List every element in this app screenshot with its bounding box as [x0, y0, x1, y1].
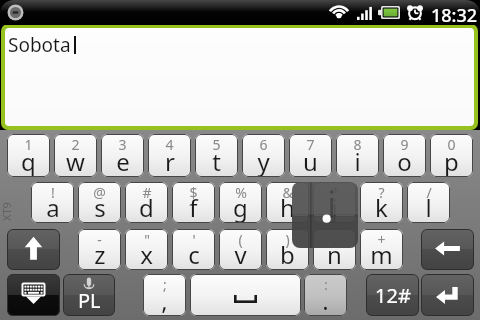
staticText: w	[66, 145, 85, 177]
staticText: d	[139, 191, 154, 223]
staticText: 6	[259, 135, 268, 154]
staticText: i	[354, 145, 361, 177]
button[interactable]: @	[78, 182, 121, 223]
staticText: v	[234, 238, 247, 270]
button[interactable]: 4	[148, 134, 191, 177]
staticText: )	[285, 230, 290, 249]
staticText: -	[97, 230, 102, 249]
button[interactable]: ;	[143, 274, 186, 316]
staticText: %	[235, 183, 247, 202]
staticText: +	[377, 230, 386, 249]
button[interactable]: %	[219, 182, 262, 223]
button[interactable]: Backspace	[421, 229, 474, 270]
button[interactable]: 6	[242, 134, 285, 177]
staticText: $	[189, 183, 198, 202]
staticText: 0	[447, 135, 456, 154]
staticText: m	[370, 238, 393, 270]
staticText: q	[21, 145, 36, 177]
staticText: #	[142, 183, 152, 202]
staticText: o	[397, 145, 412, 177]
staticText: XT9	[0, 202, 14, 221]
button[interactable]: Space	[190, 274, 301, 316]
staticText: 12#	[375, 282, 411, 309]
staticText: t	[212, 145, 221, 177]
button[interactable]: Sobota	[1, 24, 478, 130]
staticText: e	[116, 145, 130, 177]
button[interactable]: 1	[7, 134, 50, 177]
staticText: j	[331, 191, 338, 223]
staticText: 3	[118, 135, 127, 154]
staticText: ;	[163, 275, 167, 294]
staticText: 1	[24, 135, 33, 154]
staticText: r	[165, 145, 175, 177]
button[interactable]: -	[78, 229, 121, 270]
button[interactable]: *	[313, 182, 356, 223]
button[interactable]: Enter	[421, 274, 474, 316]
button[interactable]: "	[125, 229, 168, 270]
button[interactable]: (	[219, 229, 262, 270]
staticText: 9	[400, 135, 409, 154]
staticText: (	[238, 230, 243, 249]
staticText: g	[233, 191, 248, 223]
button[interactable]: :	[304, 274, 347, 316]
staticText: y	[257, 145, 270, 177]
staticText: Sobota	[8, 32, 71, 58]
staticText: x	[140, 238, 153, 270]
button[interactable]: 2	[54, 134, 97, 177]
staticText: ?	[378, 183, 385, 202]
staticText: l	[425, 191, 432, 223]
button[interactable]: .	[313, 229, 356, 270]
button[interactable]: Shift	[7, 229, 60, 270]
button[interactable]: &	[266, 182, 309, 223]
button[interactable]: !	[31, 182, 74, 223]
staticText: a	[46, 191, 60, 223]
staticText: p	[444, 145, 459, 177]
staticText: :	[324, 275, 328, 294]
button[interactable]: Voice input, Polish	[63, 274, 115, 316]
staticText: 7	[306, 135, 315, 154]
staticText: k	[375, 191, 388, 223]
staticText: &	[282, 183, 293, 202]
button[interactable]: Numbers and symbols	[366, 274, 419, 316]
button[interactable]: /	[407, 182, 450, 223]
staticText: s	[94, 191, 106, 223]
staticText: n	[327, 238, 342, 270]
staticText: 8	[353, 135, 362, 154]
button[interactable]: )	[266, 229, 309, 270]
staticText: b	[280, 238, 295, 270]
staticText: 5	[212, 135, 221, 154]
staticText: '	[192, 230, 196, 249]
button[interactable]: 8	[336, 134, 379, 177]
staticText: u	[303, 145, 318, 177]
staticText: .	[333, 230, 337, 249]
button[interactable]: $	[172, 182, 215, 223]
staticText: *	[331, 183, 339, 202]
staticText: ,	[161, 284, 168, 316]
staticText: "	[144, 230, 150, 249]
button[interactable]: 5	[195, 134, 238, 177]
staticText: 4	[165, 135, 174, 154]
staticText: .	[322, 284, 329, 316]
staticText: 2	[71, 135, 80, 154]
staticText: @	[93, 183, 106, 202]
staticText: PL	[78, 287, 101, 314]
button[interactable]: 3	[101, 134, 144, 177]
staticText: z	[94, 238, 106, 270]
button[interactable]: ?	[360, 182, 403, 223]
button[interactable]: +	[360, 229, 403, 270]
button[interactable]: 0	[430, 134, 473, 177]
staticText: 18:32	[431, 3, 478, 28]
button[interactable]: #	[125, 182, 168, 223]
button[interactable]: '	[172, 229, 215, 270]
button[interactable]: Hide keyboard	[7, 274, 60, 316]
staticText: /	[426, 183, 432, 202]
staticText: !	[51, 183, 55, 202]
staticText: f	[189, 191, 198, 223]
button[interactable]: 7	[289, 134, 332, 177]
button[interactable]: 9	[383, 134, 426, 177]
staticText: h	[280, 191, 295, 223]
staticText: c	[188, 238, 200, 270]
